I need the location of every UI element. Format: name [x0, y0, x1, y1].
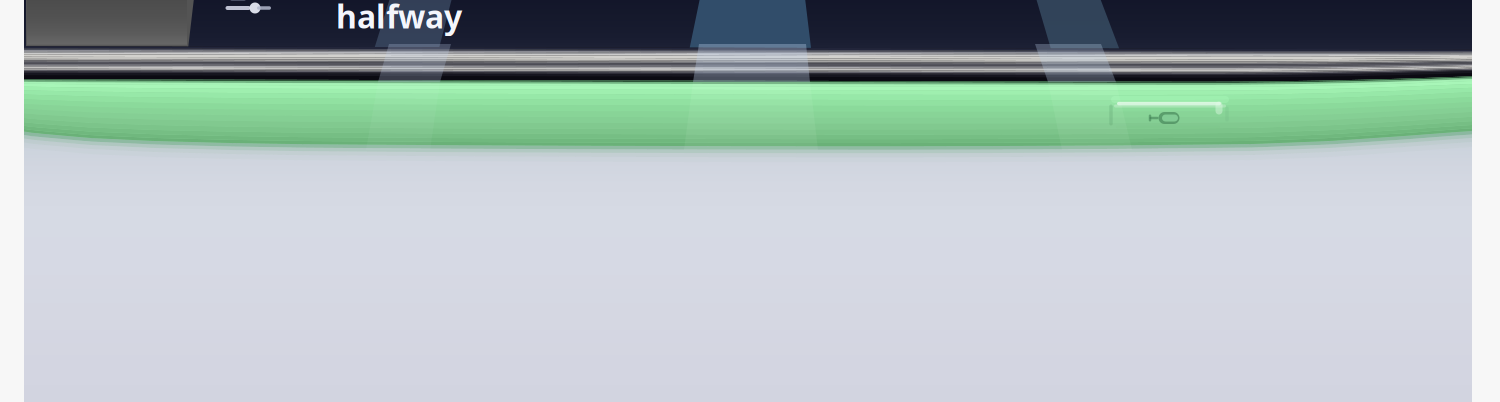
staticText: halfway: [336, 0, 462, 37]
button[interactable]: Side button: [0, 0, 1500, 402]
button[interactable]: halfway: [336, 0, 462, 37]
button[interactable]: Playback position: [225, 6, 250, 10]
